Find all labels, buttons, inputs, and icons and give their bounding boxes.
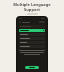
staticText: Multiple Language	[13, 2, 51, 7]
button[interactable]	[19, 25, 45, 28]
button[interactable]	[19, 33, 45, 36]
button[interactable]	[19, 45, 45, 48]
staticText: Support	[24, 7, 40, 12]
button[interactable]	[19, 29, 45, 32]
button[interactable]	[19, 41, 45, 44]
button[interactable]	[19, 37, 45, 40]
button[interactable]	[25, 66, 39, 69]
